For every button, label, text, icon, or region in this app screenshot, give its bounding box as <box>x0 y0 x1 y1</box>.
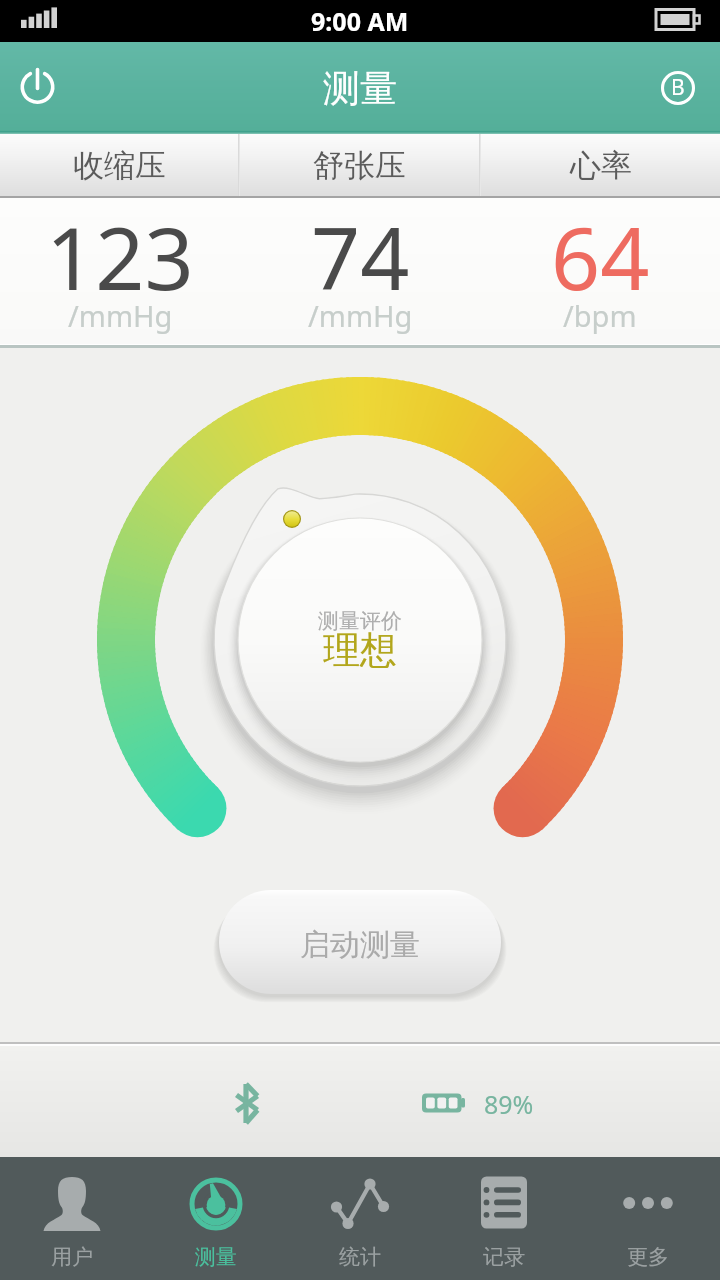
button[interactable]: Power <box>0 42 76 134</box>
staticText: 测量 <box>195 1244 237 1270</box>
staticText: 123 <box>46 198 194 315</box>
staticText: 64 <box>551 198 650 315</box>
staticText: 更多 <box>627 1244 669 1270</box>
button[interactable]: 记录 <box>432 1157 576 1280</box>
staticText: 测量 <box>323 65 397 112</box>
button[interactable]: 统计 <box>288 1157 432 1280</box>
staticText: 记录 <box>483 1244 525 1270</box>
staticText: /mmHg <box>68 296 173 335</box>
staticText: 舒张压 <box>313 146 406 185</box>
staticText: 9:00 AM <box>311 4 409 38</box>
button[interactable]: 舒张压 <box>240 134 479 196</box>
button[interactable]: 启动测量 <box>219 890 501 994</box>
button[interactable]: Bluetooth device <box>644 54 712 122</box>
staticText: /mmHg <box>308 296 413 335</box>
staticText: 收缩压 <box>73 146 166 185</box>
button[interactable]: 更多 <box>576 1157 720 1280</box>
staticText: 理想 <box>323 627 397 674</box>
staticText: 用户 <box>51 1244 93 1270</box>
staticText: 启动测量 <box>300 926 420 964</box>
button[interactable]: 收缩压 <box>0 134 238 196</box>
button[interactable]: 用户 <box>0 1157 144 1280</box>
staticText: 统计 <box>339 1244 381 1270</box>
button[interactable]: 测量 <box>144 1157 288 1280</box>
staticText: 74 <box>311 198 410 315</box>
staticText: /bpm <box>563 296 637 335</box>
staticText: 89% <box>484 1087 534 1121</box>
staticText: 测量评价 <box>318 608 402 634</box>
staticText: 心率 <box>570 146 632 185</box>
staticText: B <box>671 73 685 102</box>
button[interactable]: 心率 <box>481 134 720 196</box>
